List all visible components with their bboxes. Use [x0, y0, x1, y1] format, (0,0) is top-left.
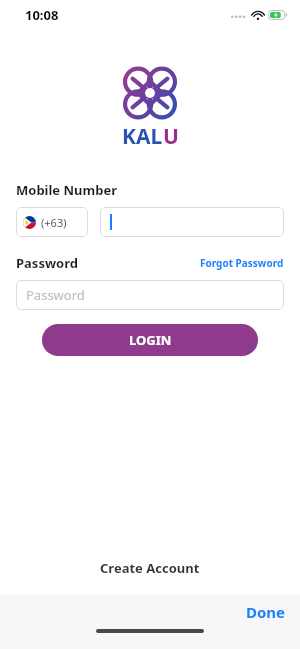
staticText: Forgot Password	[200, 256, 284, 270]
staticText: U	[163, 122, 179, 151]
button[interactable]: Done	[232, 596, 300, 628]
staticText: KAL	[122, 122, 163, 151]
staticText: Done	[246, 602, 286, 622]
button[interactable]: LOGIN	[42, 324, 258, 356]
button[interactable]	[100, 207, 284, 237]
button[interactable]: Create Account	[96, 555, 204, 581]
button[interactable]: Password	[16, 280, 284, 310]
staticText: Mobile Number	[16, 181, 117, 199]
button[interactable]: (+63)	[16, 207, 88, 237]
staticText: LOGIN	[129, 331, 172, 349]
staticText: (+63)	[41, 215, 67, 230]
button[interactable]: Forgot Password	[200, 256, 284, 270]
staticText: Password	[26, 286, 85, 304]
staticText: 10:08	[25, 6, 59, 24]
staticText: Password	[16, 254, 78, 272]
staticText: Create Account	[100, 559, 200, 577]
